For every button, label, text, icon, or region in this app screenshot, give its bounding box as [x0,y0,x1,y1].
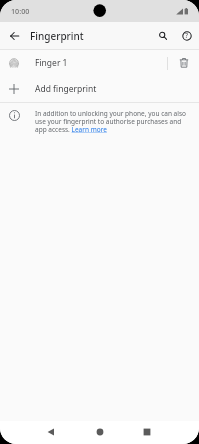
button[interactable]: Finger 1 [0,50,199,76]
button[interactable]: Back [39,420,63,443]
button[interactable]: Delete [168,50,199,76]
staticText: Add fingerprint [35,83,97,95]
staticText: In addition to unlocking your phone, you… [35,109,187,134]
button[interactable]: Help [176,25,198,47]
staticText: ? [185,31,189,41]
button[interactable]: Add fingerprint [0,76,199,102]
staticText: 10:00 [11,6,30,16]
button[interactable]: Back [4,25,26,47]
button[interactable]: Search [152,25,174,47]
button[interactable]: Recents [135,420,159,443]
staticText: Fingerprint [30,29,84,43]
button[interactable]: Home [88,420,112,443]
staticText: Finger 1 [35,57,68,69]
